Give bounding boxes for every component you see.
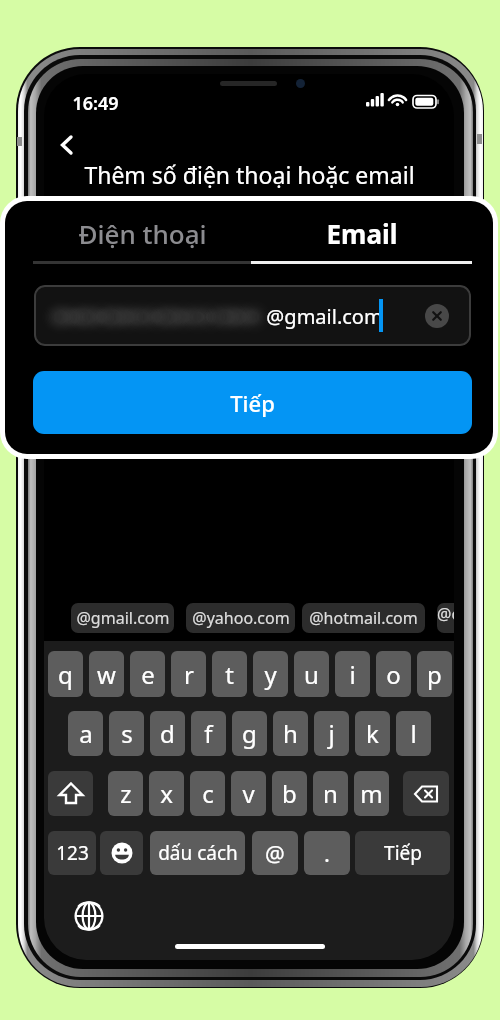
button[interactable]: @hotmail.com [302, 603, 425, 633]
button[interactable]: z [108, 771, 143, 816]
staticText: Thêm số điện thoại hoặc email [84, 159, 415, 190]
button[interactable]: c [190, 771, 225, 816]
staticText: @gmail.com [76, 607, 170, 629]
button[interactable]: dấu cách [150, 831, 245, 875]
staticText: y [264, 658, 277, 691]
button[interactable]: y [253, 651, 288, 697]
button[interactable]: s [109, 711, 144, 756]
button[interactable]: Shift [48, 771, 93, 816]
staticText: Tiếp [230, 388, 275, 418]
staticText: c [202, 777, 214, 810]
button[interactable]: b [272, 771, 307, 816]
staticText: f [204, 717, 213, 750]
button[interactable]: Emoji [100, 831, 143, 875]
staticText: Tiếp [384, 840, 422, 866]
button[interactable]: Switch keyboard language [72, 899, 106, 933]
button[interactable]: @gmail.com [34, 285, 471, 346]
staticText: x [160, 777, 173, 810]
staticText: d [160, 717, 175, 750]
button[interactable]: Backspace [403, 771, 449, 816]
button[interactable]: r [171, 651, 206, 697]
staticText: @yahoo.com [192, 607, 290, 629]
staticText: i [349, 658, 356, 691]
staticText: @hotmail.com [309, 607, 418, 629]
button[interactable]: x [149, 771, 184, 816]
staticText: n [323, 777, 338, 810]
button[interactable]: o [376, 651, 411, 697]
staticText: v [242, 777, 255, 810]
staticText: b [282, 777, 297, 810]
staticText: s [121, 717, 133, 750]
staticText: r [184, 658, 194, 691]
button[interactable]: q [48, 651, 83, 697]
button[interactable]: w [89, 651, 124, 697]
button[interactable]: m [354, 771, 389, 816]
staticText: l [410, 717, 417, 750]
button[interactable]: i [335, 651, 370, 697]
staticText: p [427, 658, 442, 691]
button[interactable]: p [417, 651, 452, 697]
staticText: @gmail.com [266, 303, 383, 330]
staticText: t [225, 658, 234, 691]
button[interactable]: t [212, 651, 247, 697]
staticText: a [79, 717, 93, 750]
staticText: 123 [56, 840, 89, 866]
staticText: Email [326, 216, 398, 251]
staticText: @ [265, 838, 285, 868]
button[interactable]: Tiếp [355, 831, 450, 875]
button[interactable]: Điện thoại [33, 209, 251, 257]
staticText: h [283, 717, 298, 750]
button[interactable]: v [231, 771, 266, 816]
staticText: m [360, 777, 383, 810]
staticText: w [97, 658, 116, 691]
button[interactable]: h [273, 711, 308, 756]
button[interactable]: Tiếp [33, 371, 472, 434]
button[interactable]: 123 [48, 831, 96, 875]
staticText: 16:49 [72, 91, 119, 116]
button[interactable]: @outlook.com [437, 603, 454, 633]
button[interactable]: e [130, 651, 165, 697]
button[interactable]: @gmail.com [71, 603, 174, 633]
staticText: j [328, 717, 335, 750]
button[interactable]: @ [252, 831, 298, 875]
staticText: k [366, 717, 379, 750]
staticText: Điện thoại [78, 216, 207, 251]
staticText: e [141, 658, 155, 691]
button[interactable]: Email [251, 209, 472, 257]
button[interactable]: Clear text [423, 302, 451, 330]
button[interactable]: j [314, 711, 349, 756]
button[interactable]: u [294, 651, 329, 697]
staticText: g [242, 717, 257, 750]
button[interactable]: g [232, 711, 267, 756]
button[interactable]: @yahoo.com [186, 603, 295, 633]
button[interactable]: a [68, 711, 103, 756]
button[interactable]: f [191, 711, 226, 756]
button[interactable]: l [396, 711, 431, 756]
staticText: . [324, 838, 330, 868]
button[interactable]: n [313, 771, 348, 816]
staticText: z [120, 777, 132, 810]
staticText: u [304, 658, 319, 691]
staticText: @outlook.com [437, 603, 454, 633]
button[interactable]: d [150, 711, 185, 756]
staticText: o [386, 658, 401, 691]
button[interactable]: . [304, 831, 350, 875]
button[interactable]: Back [44, 122, 90, 168]
staticText: dấu cách [158, 840, 238, 866]
staticText: q [58, 658, 73, 691]
button[interactable]: k [355, 711, 390, 756]
